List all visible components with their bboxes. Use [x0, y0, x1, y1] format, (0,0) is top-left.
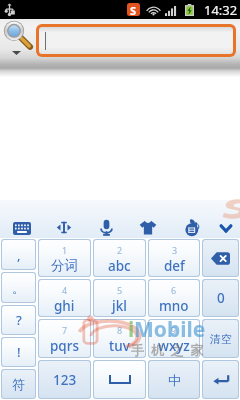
staticText: 0: [217, 289, 225, 307]
button[interactable]: 9: [149, 320, 199, 357]
button[interactable]: 4: [39, 280, 90, 316]
button[interactable]: 123: [39, 361, 90, 398]
staticText: ghi: [54, 297, 75, 315]
button[interactable]: 符: [2, 370, 35, 398]
staticText: 1: [62, 244, 68, 256]
button[interactable]: 3: [149, 240, 199, 276]
staticText: 14:32: [204, 1, 238, 19]
staticText: 3: [172, 244, 178, 256]
staticText: !: [17, 343, 21, 361]
button[interactable]: 1: [39, 240, 90, 276]
button[interactable]: Enter: [203, 361, 238, 398]
staticText: mno: [159, 297, 189, 315]
staticText: 7: [62, 324, 68, 336]
button[interactable]: ,: [2, 240, 35, 269]
staticText: 8: [117, 324, 123, 336]
button[interactable]: [39, 27, 233, 54]
button[interactable]: 8: [94, 320, 145, 357]
button[interactable]: Space: [94, 361, 145, 398]
button[interactable]: Voice input: [91, 212, 121, 242]
button[interactable]: 清空: [203, 320, 238, 357]
button[interactable]: 。: [2, 273, 35, 302]
button[interactable]: !: [2, 338, 35, 366]
staticText: 清空: [210, 332, 232, 346]
staticText: 手 机 之 家: [131, 341, 204, 359]
staticText: 9: [171, 324, 177, 336]
button[interactable]: 中: [149, 361, 199, 398]
staticText: ,: [17, 246, 21, 264]
button[interactable]: Backspace: [203, 240, 238, 276]
button[interactable]: 7: [39, 320, 90, 357]
button[interactable]: Hide keyboard: [211, 213, 240, 243]
button[interactable]: 2: [94, 240, 145, 276]
staticText: i: [128, 315, 135, 344]
button[interactable]: Keyboard layout: [7, 213, 37, 243]
staticText: wxyz: [158, 337, 190, 355]
staticText: tuv: [109, 337, 130, 355]
button[interactable]: 5: [94, 280, 145, 316]
staticText: 符: [12, 376, 25, 392]
button[interactable]: Themes: [133, 212, 163, 242]
button[interactable]: Search provider: [0, 19, 36, 68]
staticText: Mobile: [134, 315, 206, 344]
button[interactable]: ?: [2, 306, 35, 334]
button[interactable]: Move cursor: [49, 212, 79, 242]
button[interactable]: 0: [203, 280, 238, 316]
staticText: ?: [16, 311, 22, 329]
staticText: 123: [53, 371, 77, 389]
staticText: 分词: [51, 257, 78, 274]
staticText: abc: [108, 257, 131, 275]
staticText: 2: [117, 244, 123, 256]
button[interactable]: 6: [149, 280, 199, 316]
staticText: 中: [168, 372, 181, 388]
staticText: 。: [12, 280, 25, 296]
staticText: def: [164, 257, 185, 275]
staticText: 5: [117, 284, 123, 296]
staticText: 6: [171, 284, 177, 296]
button[interactable]: Expression: [177, 212, 207, 242]
staticText: S: [130, 3, 137, 16]
staticText: pqrs: [50, 337, 80, 355]
staticText: 4: [62, 284, 68, 296]
staticText: jkl: [112, 297, 127, 315]
